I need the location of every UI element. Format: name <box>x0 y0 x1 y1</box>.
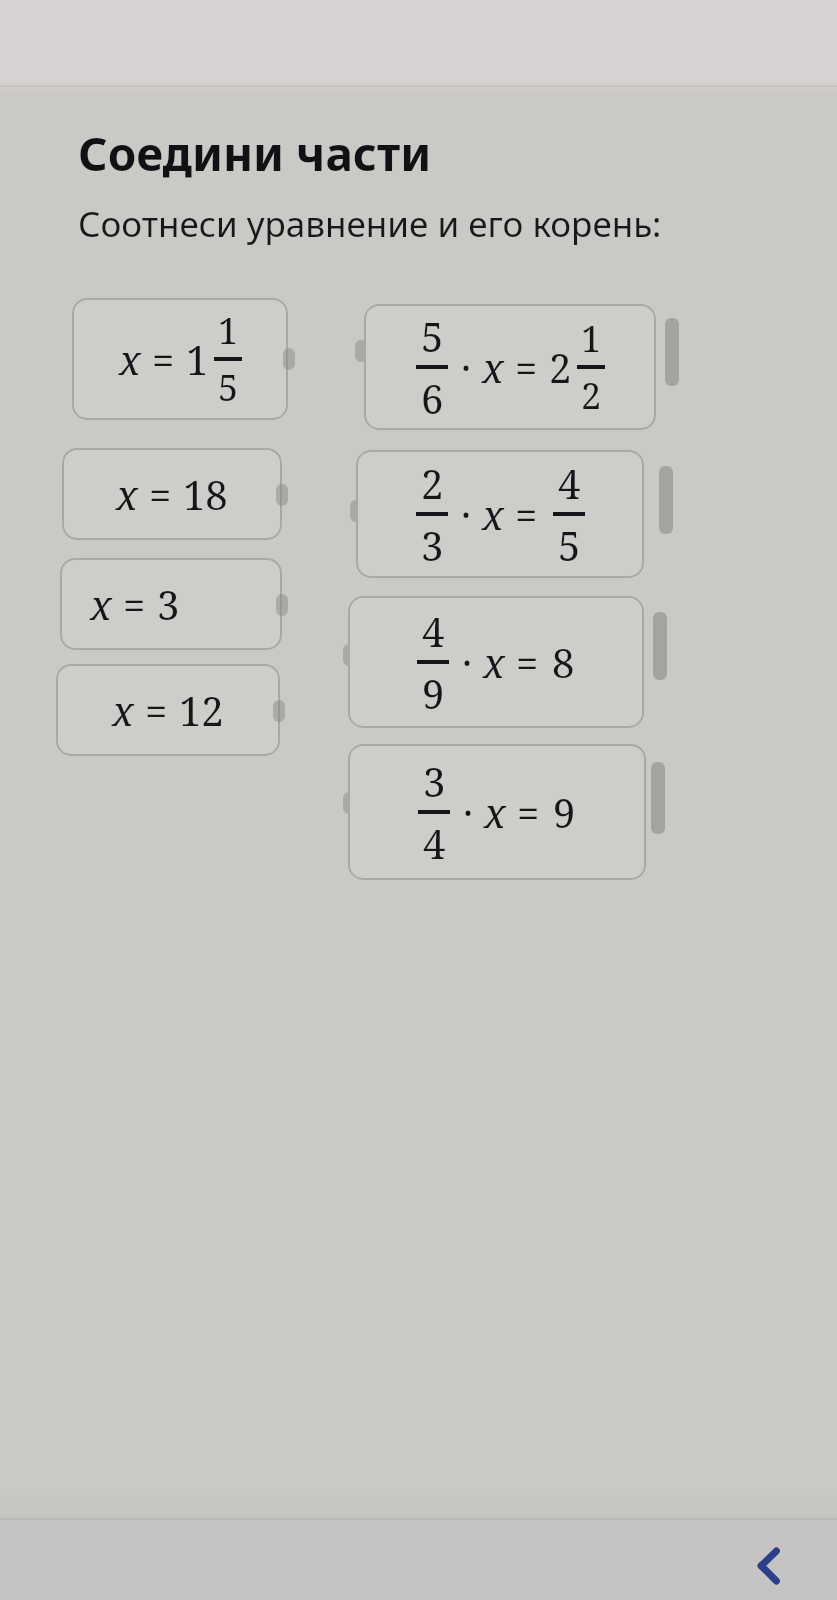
staticText: 5 <box>421 309 444 363</box>
staticText: 4 <box>558 456 581 510</box>
staticText: 1 <box>186 332 209 386</box>
staticText: 2 <box>421 456 444 510</box>
button[interactable]: x <box>62 448 282 540</box>
staticText: = <box>149 467 172 521</box>
staticText: x <box>112 683 134 737</box>
staticText: 4 <box>423 816 446 870</box>
staticText: 2 <box>549 340 572 394</box>
staticText: · <box>461 340 471 394</box>
staticText: 9 <box>553 785 576 839</box>
button[interactable]: 4 <box>348 596 644 728</box>
staticText: = <box>517 785 540 839</box>
staticText: 4 <box>422 604 445 658</box>
staticText: · <box>461 487 471 541</box>
staticText: 18 <box>183 467 228 521</box>
staticText: = <box>516 635 539 689</box>
button[interactable]: 5 <box>364 304 656 430</box>
staticText: x <box>116 467 138 521</box>
staticText: 8 <box>552 635 575 689</box>
staticText: Соедини части <box>78 122 432 185</box>
staticText: 3 <box>157 577 180 631</box>
staticText: 1 <box>581 314 602 363</box>
staticText: 9 <box>422 666 445 720</box>
staticText: = <box>515 487 538 541</box>
staticText: x <box>119 332 141 386</box>
staticText: · <box>463 785 473 839</box>
staticText: 1 <box>218 306 239 355</box>
staticText: 12 <box>179 683 224 737</box>
staticText: x <box>484 785 506 839</box>
staticText: = <box>152 332 175 386</box>
staticText: 3 <box>421 518 444 572</box>
staticText: 5 <box>558 518 581 572</box>
staticText: = <box>123 577 146 631</box>
staticText: Соотнеси уравнение и его корень: <box>78 200 662 248</box>
button[interactable]: x <box>72 298 288 420</box>
staticText: x <box>90 577 112 631</box>
staticText: x <box>482 340 504 394</box>
staticText: 6 <box>421 371 444 425</box>
staticText: = <box>515 340 538 394</box>
staticText: = <box>145 683 168 737</box>
button[interactable]: x <box>60 558 282 650</box>
staticText: x <box>483 635 505 689</box>
button[interactable]: 2 <box>356 450 644 578</box>
staticText: 3 <box>423 754 446 808</box>
staticText: · <box>462 635 472 689</box>
staticText: x <box>482 487 504 541</box>
staticText: 5 <box>218 363 239 412</box>
button[interactable]: Back <box>730 1530 810 1600</box>
staticText: 2 <box>581 371 602 420</box>
button[interactable]: x <box>56 664 280 756</box>
button[interactable]: 3 <box>348 744 646 880</box>
